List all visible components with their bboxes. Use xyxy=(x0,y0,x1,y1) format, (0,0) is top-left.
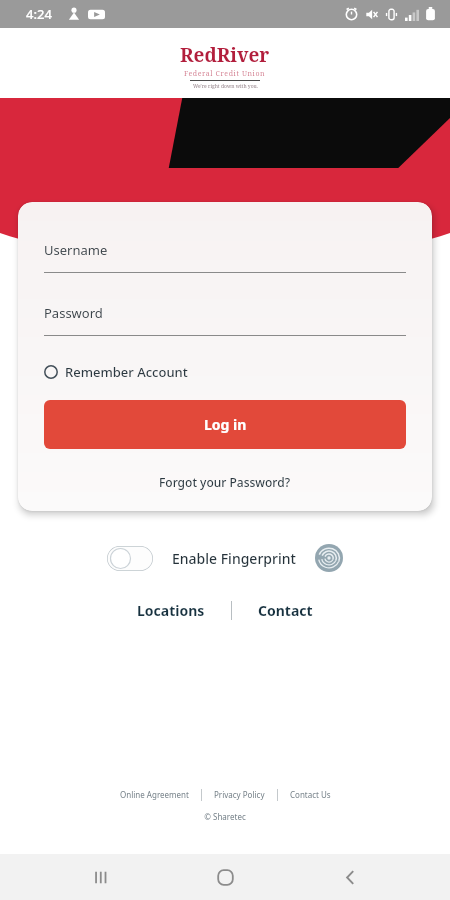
button[interactable]: Locations xyxy=(131,597,211,624)
button[interactable]: Recents xyxy=(77,854,125,900)
button[interactable]: Fingerprint xyxy=(315,544,343,572)
staticText: © Sharetec xyxy=(204,811,246,822)
staticText: Federal Credit Union xyxy=(184,69,266,79)
button[interactable]: Log in xyxy=(44,400,406,449)
staticText: 4:24 xyxy=(26,5,52,23)
staticText: Username xyxy=(44,241,108,259)
button[interactable]: Contact xyxy=(252,597,319,624)
button[interactable]: Password xyxy=(44,304,406,336)
staticText: Log in xyxy=(204,415,247,434)
button[interactable]: Enable Fingerprint xyxy=(172,549,296,568)
button[interactable]: Back xyxy=(326,854,374,900)
staticText: Password xyxy=(44,304,103,322)
button[interactable]: Enable Fingerprint toggle xyxy=(107,546,153,571)
button[interactable]: Home xyxy=(201,854,249,900)
button[interactable]: Online Agreement xyxy=(116,787,193,802)
staticText: RedRiver xyxy=(180,42,270,68)
button[interactable]: Contact Us xyxy=(286,787,335,802)
button[interactable]: Forgot your Password? xyxy=(155,470,295,494)
button[interactable]: Remember Account xyxy=(44,363,406,381)
staticText: We're right down with you. xyxy=(193,83,258,90)
button[interactable]: Username xyxy=(44,241,406,273)
staticText: Remember Account xyxy=(65,363,188,381)
button[interactable]: Privacy Policy xyxy=(210,787,269,802)
